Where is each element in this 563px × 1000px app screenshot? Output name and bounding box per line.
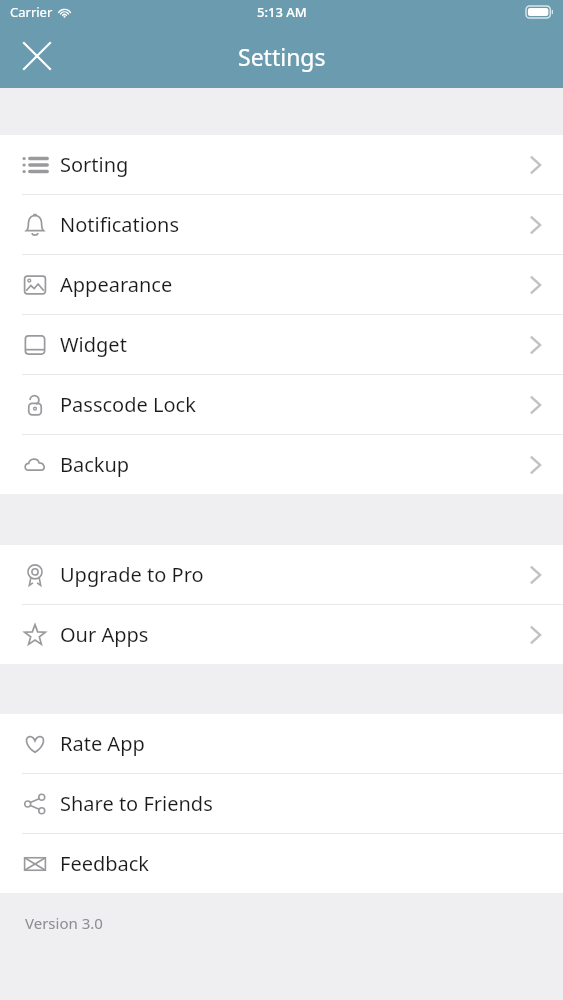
button[interactable]: Feedback [0,834,563,893]
staticText: Passcode Lock [60,391,196,418]
staticText: Backup [60,451,130,478]
staticText: Settings [238,41,326,72]
staticText: Upgrade to Pro [60,561,204,588]
button[interactable]: Appearance [0,255,563,314]
button[interactable]: Widget [0,315,563,374]
staticText: Notifications [60,211,179,238]
button[interactable]: Notifications [0,195,563,254]
button[interactable]: Backup [0,435,563,494]
staticText: Appearance [60,271,173,298]
button[interactable]: Close [12,31,62,81]
staticText: Feedback [60,850,150,877]
staticText: Version 3.0 [25,913,103,933]
button[interactable]: Our Apps [0,605,563,664]
button[interactable]: Passcode Lock [0,375,563,434]
staticText: Rate App [60,730,145,757]
staticText: 5:13 AM [257,3,307,21]
staticText: Carrier [10,3,53,21]
button[interactable]: Sorting [0,135,563,194]
button[interactable]: Rate App [0,714,563,773]
button[interactable]: Upgrade to Pro [0,545,563,604]
staticText: Our Apps [60,621,149,648]
staticText: Sorting [60,151,129,178]
staticText: Widget [60,331,127,358]
staticText: Share to Friends [60,790,213,817]
button[interactable]: Share to Friends [0,774,563,833]
